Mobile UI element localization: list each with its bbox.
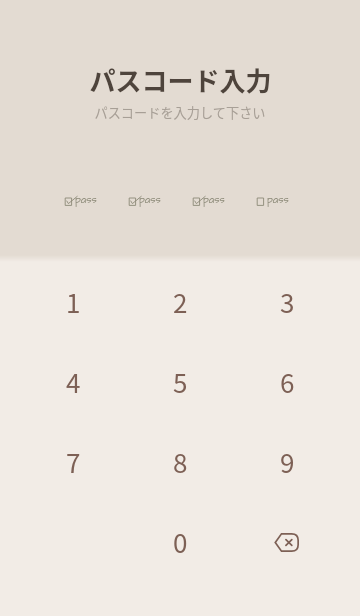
button[interactable]: pass [257,191,289,206]
staticText: パスコードを入力して下さい [94,103,266,122]
button[interactable]: Backspace [253,509,319,575]
button[interactable]: 7 [33,422,113,502]
staticText: パスコード入力 [89,61,272,99]
button[interactable]: pass [193,191,225,206]
button[interactable]: 8 [140,422,220,502]
button[interactable]: 5 [140,342,220,422]
staticText: pass [139,193,161,208]
staticText: 7 [66,443,81,481]
button[interactable]: 6 [247,342,327,422]
staticText: 2 [173,283,188,321]
button[interactable]: pass [65,191,97,206]
staticText: 9 [280,443,295,481]
button[interactable]: pass [129,191,161,206]
staticText: 6 [280,363,295,401]
staticText: pass [267,193,289,208]
staticText: 0 [173,523,188,561]
button[interactable]: 2 [140,262,220,342]
staticText: 3 [280,283,295,321]
staticText: 8 [173,443,188,481]
button[interactable]: 9 [247,422,327,502]
staticText: pass [75,193,97,208]
staticText: 1 [66,283,81,321]
button[interactable]: 1 [33,262,113,342]
staticText: pass [203,193,225,208]
staticText: 4 [66,363,81,401]
button[interactable]: 0 [140,502,220,582]
staticText: 5 [173,363,188,401]
button[interactable]: 3 [247,262,327,342]
button[interactable]: 4 [33,342,113,422]
